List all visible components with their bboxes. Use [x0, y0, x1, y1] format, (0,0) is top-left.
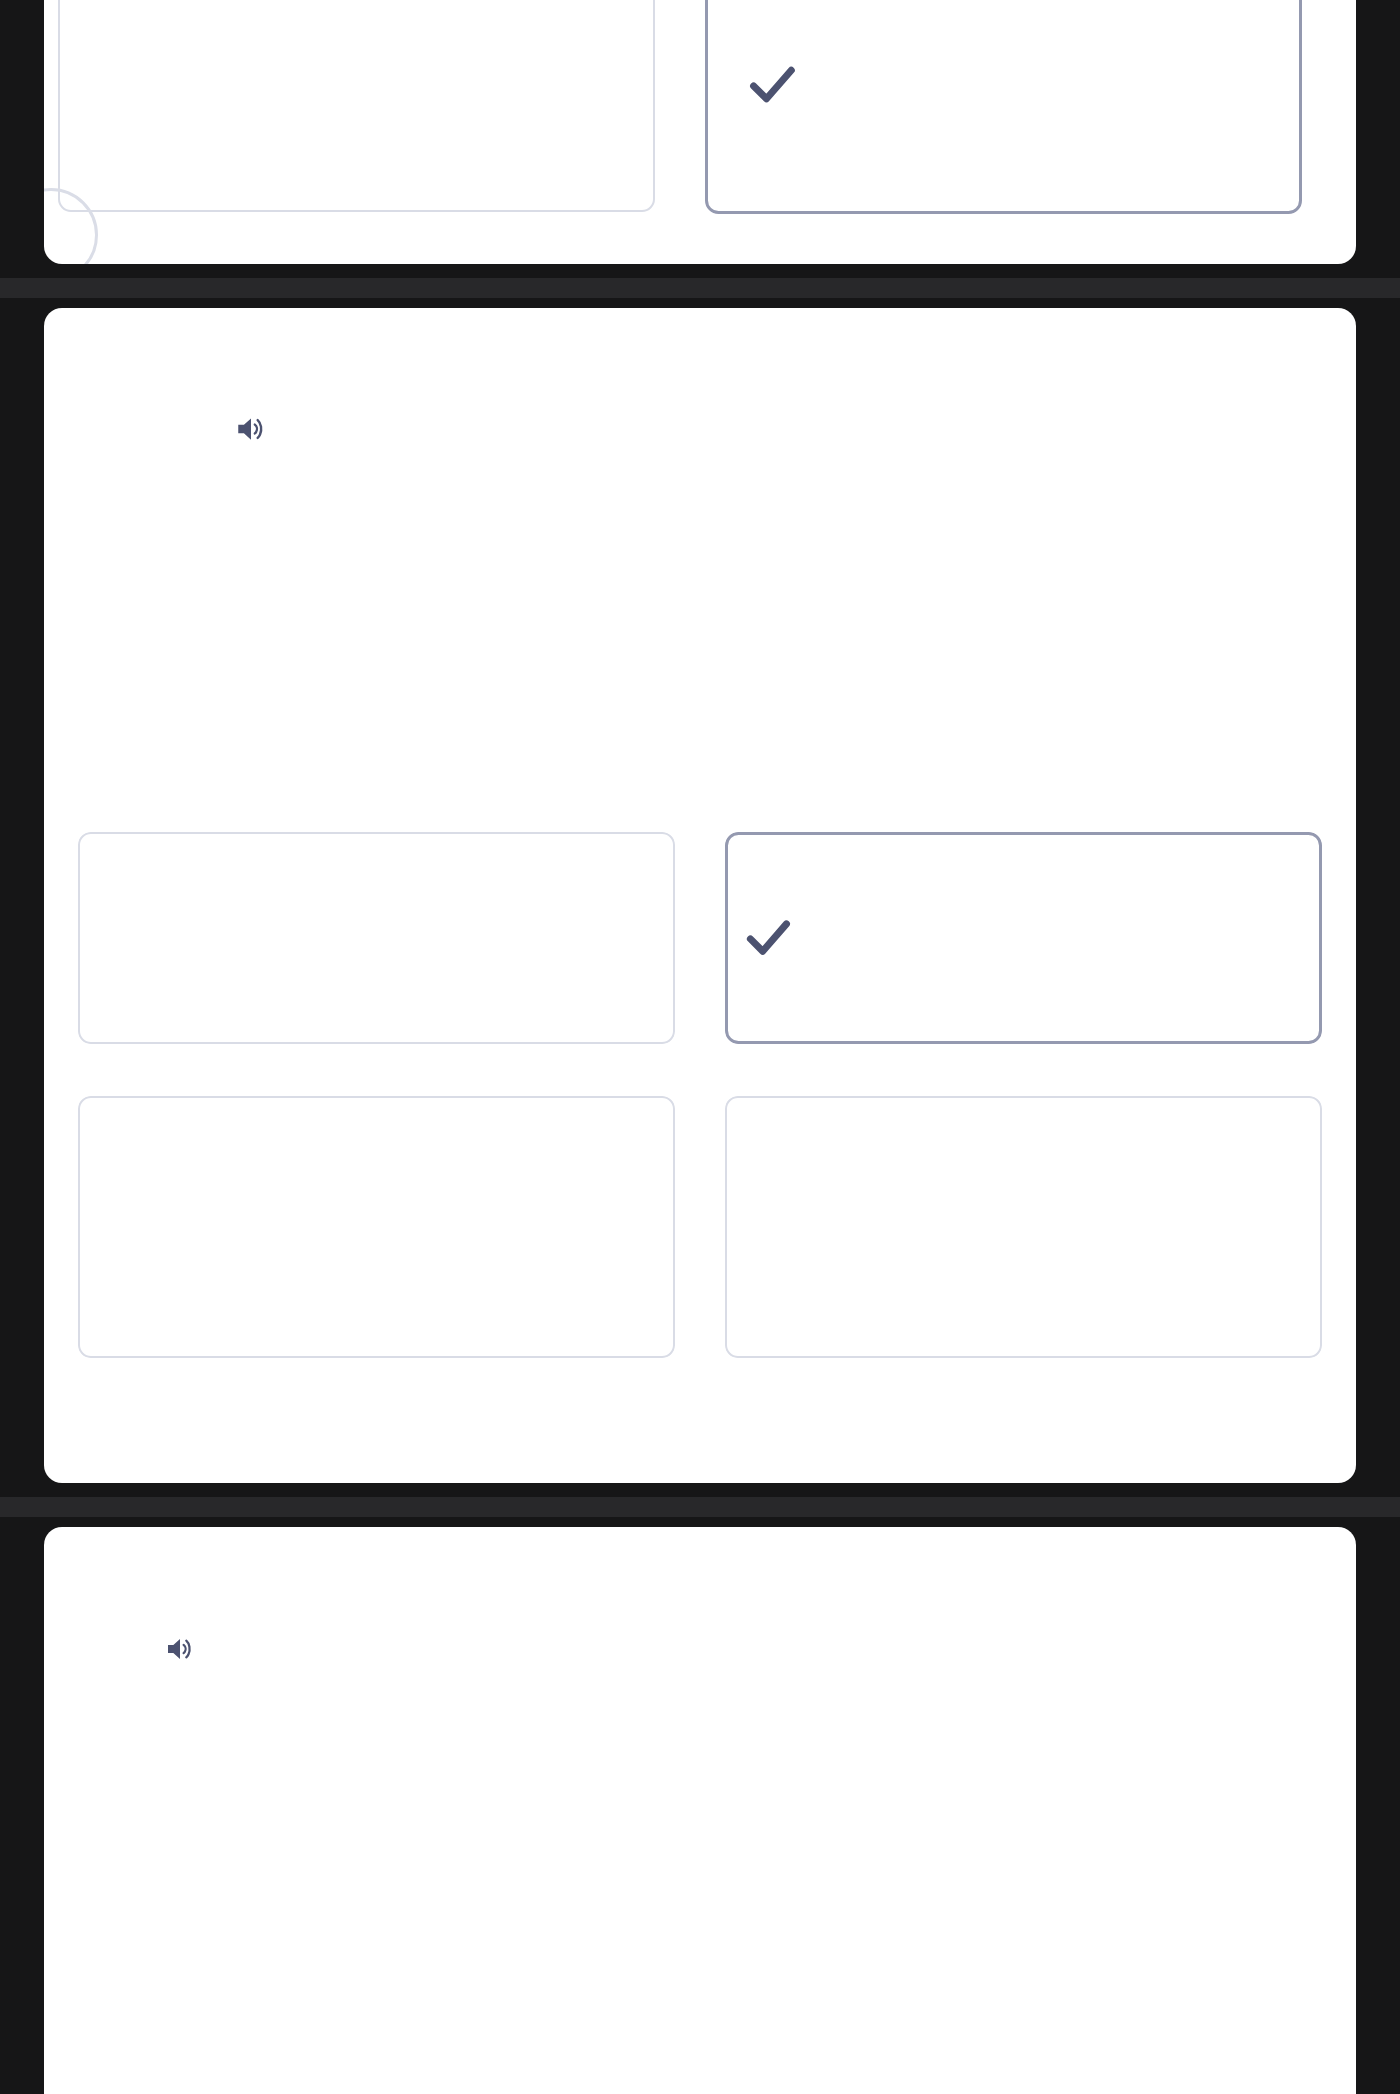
button[interactable] — [78, 832, 675, 1044]
button[interactable]: Volume — [44, 1527, 1356, 2094]
other: Volume — [164, 1633, 196, 1665]
button[interactable] — [44, 0, 1356, 264]
button[interactable] — [725, 832, 1322, 1044]
button[interactable] — [725, 1096, 1322, 1358]
button[interactable] — [78, 1096, 675, 1358]
button[interactable]: Volume — [44, 308, 1356, 1483]
button[interactable] — [705, 0, 1302, 214]
other: Volume — [234, 412, 268, 446]
